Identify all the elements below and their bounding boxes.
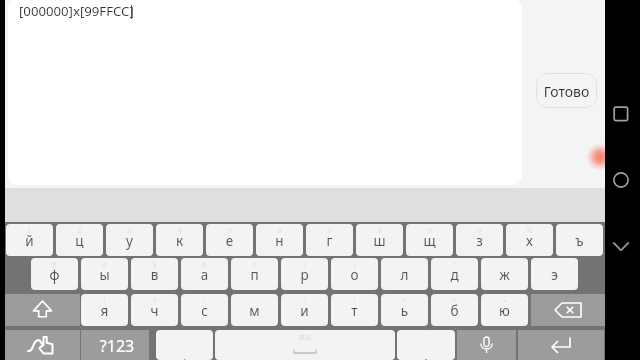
staticText: ' [381,260,428,290]
staticText: [000000]x[99FFCC] [19,2,134,20]
staticText: 3 [106,226,153,256]
staticText: 0 [456,226,503,256]
button[interactable]: ; [531,258,578,290]
staticText: н [256,232,303,256]
staticText: ц [56,232,103,256]
button[interactable]: Shift [5,294,80,326]
staticText: ж [481,266,528,290]
button[interactable]: - [556,224,603,256]
staticText: 4 [156,226,203,256]
staticText: 9 [406,226,453,256]
button[interactable]: ! [81,294,128,326]
button[interactable]: $ [131,258,178,290]
button[interactable]: Symbols [81,330,149,360]
staticText: 7 [306,226,353,256]
staticText: % [506,226,553,256]
button[interactable]: = [481,294,528,326]
staticText: л [381,266,428,290]
button[interactable]: 7 [306,224,353,256]
staticText: - [556,226,603,256]
button[interactable]: & [181,258,228,290]
button[interactable]: Handwriting [5,330,80,360]
button[interactable]: ) [331,258,378,290]
button[interactable]: 9 [406,224,453,256]
button[interactable]: : [481,258,528,290]
staticText: г [306,232,353,256]
staticText: ( [281,260,328,290]
staticText: п [231,266,278,290]
button[interactable]: Home [606,165,636,195]
button[interactable]: 8 [356,224,403,256]
button[interactable]: 3 [106,224,153,256]
button[interactable]: Voice input [457,330,516,360]
button[interactable]: 0 [456,224,503,256]
staticText: @ [31,260,78,290]
button[interactable]: 4 [156,224,203,256]
button[interactable]: % [506,224,553,256]
button[interactable]: Hide keyboard [606,231,636,261]
staticText: RUS [215,333,395,360]
staticText: | [331,296,378,326]
staticText: щ [406,232,453,256]
button[interactable]: < [381,294,428,326]
staticText: ь [381,302,428,326]
button[interactable]: Enter [518,330,604,360]
button[interactable]: Recents [606,99,636,129]
button[interactable]: ? [131,294,178,326]
staticText: е [206,232,253,256]
button[interactable]: @ [31,258,78,290]
staticText: э [531,266,578,290]
button[interactable]: 2 [56,224,103,256]
button[interactable]: ... [156,330,213,360]
button[interactable]: 6 [256,224,303,256]
staticText: 1 [6,226,53,256]
button[interactable]: > [431,294,478,326]
button[interactable]: \ [281,294,328,326]
staticText: ы [81,266,128,290]
staticText: о [331,266,378,290]
staticText: д [431,266,478,290]
staticText: 5 [206,226,253,256]
staticText: ш [356,232,403,256]
button[interactable]: * [231,258,278,290]
button[interactable]: " [431,258,478,290]
staticText: # [81,260,128,290]
button[interactable]: Backspace [531,294,605,326]
staticText: ч [131,302,178,326]
staticText: $ [131,260,178,290]
button[interactable]: : [397,330,455,360]
button[interactable] [8,0,522,185]
staticText: 2 [56,226,103,256]
staticText: , [156,347,213,360]
staticText: ~ [231,296,278,326]
button[interactable]: ( [281,258,328,290]
button[interactable]: ~ [231,294,278,326]
staticText: я [81,302,128,326]
staticText [81,331,149,360]
staticText: : [481,260,528,290]
staticText: ф [31,266,78,290]
staticText: > [431,296,478,326]
staticText: = [481,296,528,326]
button[interactable]: | [331,294,378,326]
staticText: Готово [536,82,597,108]
staticText: у [106,232,153,256]
staticText: ?123 [83,335,151,360]
staticText: & [181,260,228,290]
button[interactable]: Space [215,330,395,360]
button[interactable]: Готово [536,73,597,108]
staticText: * [231,260,278,290]
button[interactable]: # [81,258,128,290]
staticText: й [6,232,53,256]
staticText: с [181,302,228,326]
staticText: к [156,232,203,256]
button[interactable]: ' [381,258,428,290]
button[interactable]: / [181,294,228,326]
staticText: з [456,232,503,256]
button[interactable]: 5 [206,224,253,256]
staticText: р [281,266,328,290]
staticText: и [281,302,328,326]
button[interactable]: 1 [6,224,53,256]
staticText: 8 [356,226,403,256]
staticText: б [431,302,478,326]
